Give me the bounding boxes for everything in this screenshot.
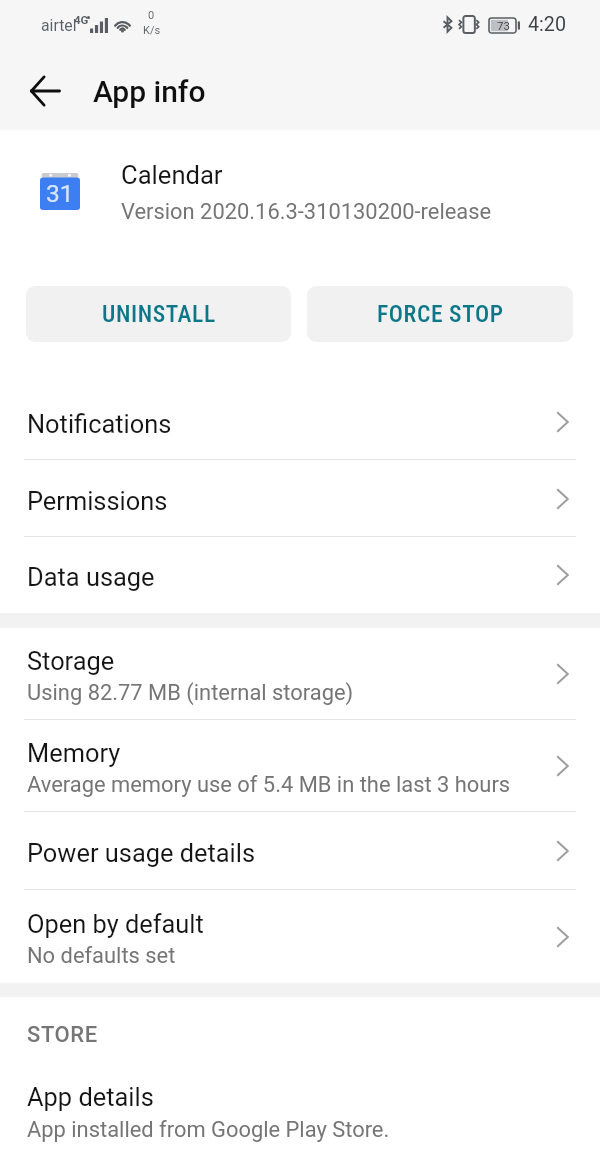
staticText: No defaults set: [27, 943, 176, 969]
staticText: STORE: [27, 1022, 98, 1048]
staticText: Open by default: [27, 909, 204, 939]
staticText: 0: [148, 9, 155, 22]
staticText: 31: [46, 179, 74, 208]
staticText: App details: [27, 1082, 154, 1112]
staticText: 4G: [74, 13, 89, 26]
staticText: 73: [497, 19, 510, 32]
staticText: K/s: [143, 24, 161, 37]
staticText: Average memory use of 5.4 MB in the last…: [27, 772, 511, 798]
button[interactable]: FORCE STOP: [307, 286, 573, 342]
staticText: Memory: [27, 738, 121, 768]
staticText: airtel: [41, 16, 77, 35]
staticText: Storage: [27, 646, 115, 676]
button[interactable]: UNINSTALL: [26, 286, 291, 342]
button[interactable]: Open by default: [0, 890, 600, 983]
staticText: Using 82.77 MB (internal storage): [27, 680, 354, 706]
staticText: Version 2020.16.3-310130200-release: [121, 199, 492, 225]
button[interactable]: Data usage: [0, 537, 600, 613]
staticText: App info: [93, 74, 206, 109]
button[interactable]: Memory: [0, 720, 600, 812]
button[interactable]: Back: [14, 60, 76, 122]
staticText: App installed from Google Play Store.: [27, 1117, 390, 1143]
staticText: 4:20: [528, 13, 566, 36]
button[interactable]: Notifications: [0, 383, 600, 460]
staticText: Permissions: [27, 486, 168, 516]
staticText: Notifications: [27, 409, 172, 439]
staticText: UNINSTALL: [102, 300, 216, 328]
staticText: Calendar: [121, 160, 223, 190]
staticText: Data usage: [27, 562, 155, 592]
button[interactable]: Storage: [0, 628, 600, 720]
staticText: Power usage details: [27, 838, 256, 868]
button[interactable]: Power usage details: [0, 812, 600, 890]
button[interactable]: App details: [0, 1082, 600, 1143]
staticText: FORCE STOP: [377, 300, 504, 328]
button[interactable]: Permissions: [0, 460, 600, 537]
